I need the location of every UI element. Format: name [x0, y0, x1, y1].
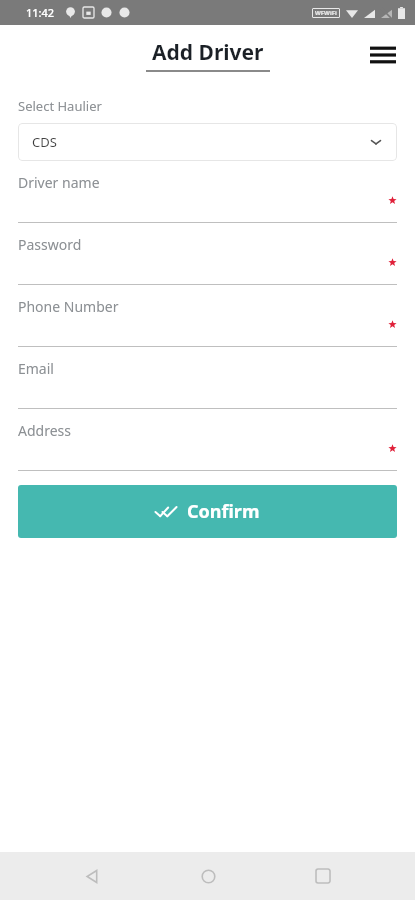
- button[interactable]: Recent apps: [299, 852, 347, 900]
- staticText: Select Haulier: [18, 97, 102, 115]
- staticText: Password: [18, 235, 82, 254]
- staticText: Address: [18, 421, 71, 440]
- staticText: Driver name: [18, 173, 100, 192]
- button[interactable]: Menu: [359, 31, 407, 79]
- button[interactable]: Phone Number: [18, 285, 397, 347]
- staticText: WFWiFi: [315, 9, 337, 17]
- button[interactable]: Confirm: [18, 485, 397, 538]
- button[interactable]: Address: [18, 409, 397, 471]
- button[interactable]: Back: [68, 852, 116, 900]
- button[interactable]: Password: [18, 223, 397, 285]
- staticText: 11:42: [26, 5, 55, 20]
- button[interactable]: CDS: [18, 123, 397, 161]
- staticText: Phone Number: [18, 297, 119, 316]
- staticText: Confirm: [187, 499, 260, 524]
- button[interactable]: Home: [184, 852, 232, 900]
- staticText: Add Driver: [152, 38, 264, 67]
- staticText: CDS: [32, 133, 57, 151]
- button[interactable]: Driver name: [18, 161, 397, 223]
- button[interactable]: Email: [18, 347, 397, 409]
- staticText: Email: [18, 359, 54, 378]
